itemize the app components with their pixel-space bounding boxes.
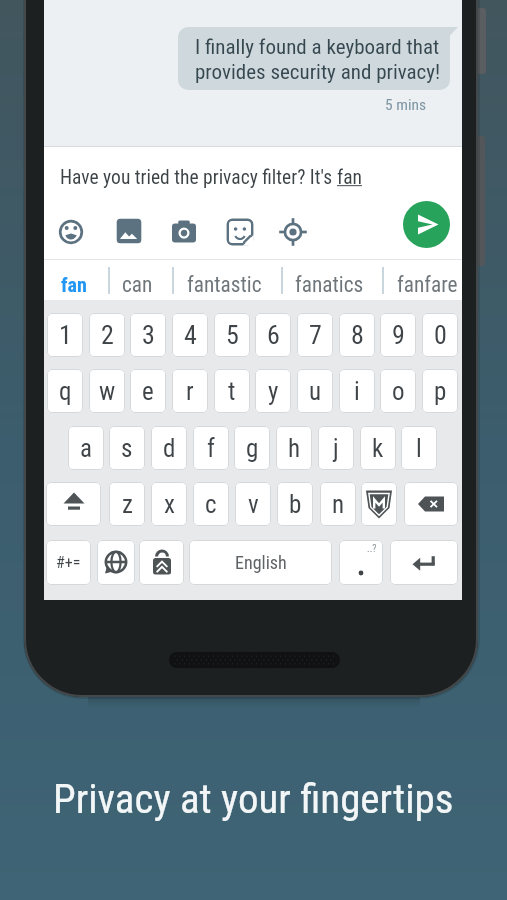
button[interactable]: fanatics: [277, 269, 381, 299]
button[interactable]: [51, 212, 91, 252]
button[interactable]: [220, 212, 260, 252]
staticText: fan: [61, 273, 87, 296]
staticText: 5 mins: [385, 96, 427, 114]
staticText: r: [186, 377, 194, 406]
staticText: w: [99, 377, 116, 406]
button[interactable]: g: [234, 426, 270, 470]
button[interactable]: i: [339, 369, 375, 413]
staticText: y: [268, 377, 279, 406]
staticText: 7: [309, 320, 322, 350]
staticText: x: [164, 490, 175, 519]
button[interactable]: w: [89, 369, 125, 413]
button[interactable]: c: [193, 482, 229, 526]
button[interactable]: can: [85, 269, 189, 299]
staticText: t: [228, 377, 236, 406]
button[interactable]: 5: [214, 313, 250, 357]
button[interactable]: fan: [22, 269, 126, 299]
button[interactable]: #+=: [46, 540, 91, 585]
staticText: 2: [101, 320, 114, 350]
staticText: j: [333, 434, 339, 463]
staticText: #+=: [56, 553, 81, 572]
staticText: English: [235, 552, 287, 573]
staticText: ..?: [367, 543, 377, 555]
button[interactable]: 6: [255, 313, 291, 357]
staticText: b: [289, 490, 302, 519]
button[interactable]: a: [68, 426, 104, 470]
button[interactable]: fantastic: [172, 269, 276, 299]
staticText: z: [122, 490, 133, 519]
button[interactable]: [273, 212, 313, 252]
button[interactable]: 4: [172, 313, 208, 357]
staticText: g: [246, 434, 259, 463]
button[interactable]: x: [151, 482, 187, 526]
button[interactable]: [390, 540, 458, 585]
staticText: can: [122, 272, 153, 297]
button[interactable]: English: [189, 540, 332, 585]
button[interactable]: [139, 540, 184, 585]
button[interactable]: [403, 201, 450, 248]
staticText: k: [372, 434, 384, 463]
button[interactable]: k: [360, 426, 396, 470]
staticText: fan: [337, 166, 362, 189]
button[interactable]: [97, 540, 135, 585]
staticText: 0: [434, 320, 447, 350]
staticText: d: [163, 434, 176, 463]
button[interactable]: 7: [297, 313, 333, 357]
staticText: 5: [226, 320, 239, 350]
staticText: s: [121, 434, 133, 463]
staticText: o: [392, 377, 405, 406]
button[interactable]: j: [318, 426, 354, 470]
button[interactable]: n: [320, 482, 356, 526]
staticText: e: [142, 377, 154, 406]
staticText: v: [248, 490, 259, 519]
staticText: n: [332, 490, 345, 519]
staticText: Have you tried the privacy filter? It's: [60, 166, 337, 189]
staticText: 4: [184, 320, 197, 350]
button[interactable]: [46, 482, 101, 526]
button[interactable]: b: [277, 482, 313, 526]
button[interactable]: [361, 482, 397, 526]
staticText: f: [207, 434, 215, 463]
button[interactable]: 2: [89, 313, 125, 357]
button[interactable]: l: [401, 426, 437, 470]
staticText: 1: [59, 320, 72, 350]
button[interactable]: fanfare: [375, 269, 479, 299]
button[interactable]: r: [172, 369, 208, 413]
staticText: l: [416, 434, 422, 463]
staticText: 9: [392, 320, 405, 350]
button[interactable]: 8: [339, 313, 375, 357]
button[interactable]: 3: [130, 313, 166, 357]
staticText: fanatics: [295, 272, 364, 297]
staticText: I finally found a keyboard that provides…: [195, 35, 441, 85]
button[interactable]: q: [47, 369, 83, 413]
button[interactable]: s: [109, 426, 145, 470]
staticText: Privacy at your fingertips: [53, 775, 454, 823]
staticText: c: [205, 490, 217, 519]
staticText: 8: [351, 320, 364, 350]
button[interactable]: v: [235, 482, 271, 526]
button[interactable]: [339, 540, 383, 585]
staticText: 6: [267, 320, 280, 350]
button[interactable]: o: [380, 369, 416, 413]
button[interactable]: 1: [47, 313, 83, 357]
button[interactable]: z: [109, 482, 145, 526]
button[interactable]: h: [276, 426, 312, 470]
button[interactable]: t: [214, 369, 250, 413]
button[interactable]: 9: [380, 313, 416, 357]
button[interactable]: y: [255, 369, 291, 413]
button[interactable]: u: [297, 369, 333, 413]
staticText: q: [59, 377, 72, 406]
button[interactable]: e: [130, 369, 166, 413]
button[interactable]: p: [422, 369, 458, 413]
staticText: fanfare: [397, 272, 458, 297]
button[interactable]: f: [193, 426, 229, 470]
staticText: h: [288, 434, 301, 463]
button[interactable]: [164, 212, 204, 252]
button[interactable]: 0: [422, 313, 458, 357]
staticText: fantastic: [187, 272, 262, 297]
button[interactable]: [404, 482, 458, 526]
staticText: 3: [142, 320, 155, 350]
staticText: a: [80, 434, 92, 463]
button[interactable]: d: [151, 426, 187, 470]
button[interactable]: [109, 211, 149, 251]
